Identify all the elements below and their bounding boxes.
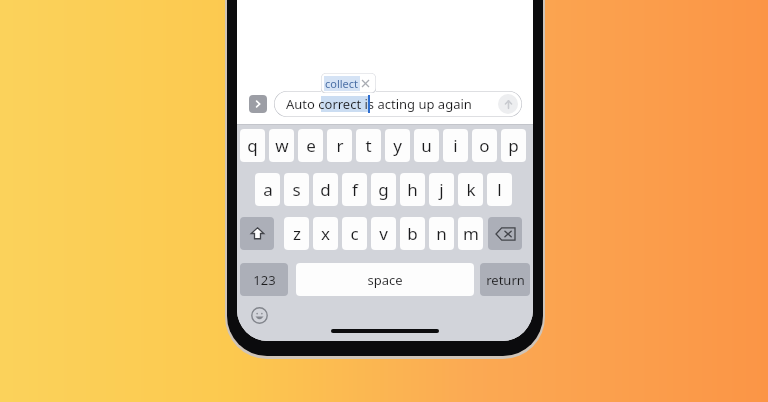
button[interactable]: r xyxy=(327,129,352,162)
button[interactable]: Delete xyxy=(488,217,522,250)
button[interactable]: Expand xyxy=(249,95,267,113)
button[interactable]: Shift xyxy=(240,217,274,250)
button[interactable]: e xyxy=(298,129,323,162)
button[interactable]: g xyxy=(371,173,396,206)
button[interactable]: o xyxy=(472,129,497,162)
staticText: s xyxy=(292,178,301,201)
staticText: a xyxy=(263,178,273,201)
staticText: i xyxy=(453,134,458,157)
staticText: j xyxy=(439,178,444,201)
button[interactable]: q xyxy=(240,129,265,162)
staticText: b xyxy=(407,222,418,245)
staticText: t xyxy=(365,134,372,157)
staticText: Auto correct is acting up again xyxy=(286,95,472,113)
staticText: m xyxy=(463,222,479,245)
staticText: d xyxy=(320,178,331,201)
staticText: w xyxy=(275,134,289,157)
staticText: u xyxy=(421,134,432,157)
button[interactable]: Emoji xyxy=(250,306,268,324)
button[interactable]: m xyxy=(458,217,483,250)
staticText: o xyxy=(479,134,490,157)
staticText: n xyxy=(436,222,447,245)
staticText: k xyxy=(466,178,476,201)
staticText: f xyxy=(352,178,358,201)
button[interactable]: d xyxy=(313,173,338,206)
button[interactable]: u xyxy=(414,129,439,162)
button[interactable]: z xyxy=(284,217,309,250)
staticText: l xyxy=(497,178,502,201)
button[interactable]: h xyxy=(400,173,425,206)
staticText: g xyxy=(378,178,389,201)
button[interactable]: l xyxy=(487,173,512,206)
staticText: c xyxy=(350,222,359,245)
button[interactable]: t xyxy=(356,129,381,162)
button[interactable]: c xyxy=(342,217,367,250)
button[interactable]: Send xyxy=(498,94,518,114)
staticText: return xyxy=(486,271,525,289)
staticText: 123 xyxy=(253,271,276,289)
staticText: collect xyxy=(325,76,359,91)
staticText: x xyxy=(321,222,330,245)
button[interactable]: s xyxy=(284,173,309,206)
button[interactable]: v xyxy=(371,217,396,250)
staticText: y xyxy=(393,134,402,157)
button[interactable]: a xyxy=(255,173,280,206)
button[interactable]: return xyxy=(480,263,530,296)
button[interactable]: x xyxy=(313,217,338,250)
button[interactable]: i xyxy=(443,129,468,162)
staticText: z xyxy=(293,222,301,245)
button[interactable]: w xyxy=(269,129,294,162)
button[interactable]: b xyxy=(400,217,425,250)
button[interactable]: space xyxy=(296,263,474,296)
button[interactable]: y xyxy=(385,129,410,162)
button[interactable]: 123 xyxy=(240,263,288,296)
staticText: q xyxy=(247,134,258,157)
staticText: p xyxy=(508,134,519,157)
staticText: space xyxy=(367,271,403,289)
button[interactable]: p xyxy=(501,129,526,162)
button[interactable]: n xyxy=(429,217,454,250)
button[interactable]: f xyxy=(342,173,367,206)
staticText: v xyxy=(379,222,388,245)
button[interactable]: Auto correct is acting up again xyxy=(274,91,522,117)
button[interactable]: collect xyxy=(321,73,376,93)
staticText: e xyxy=(306,134,316,157)
staticText: h xyxy=(407,178,418,201)
staticText: r xyxy=(336,134,344,157)
button[interactable]: k xyxy=(458,173,483,206)
button[interactable]: j xyxy=(429,173,454,206)
